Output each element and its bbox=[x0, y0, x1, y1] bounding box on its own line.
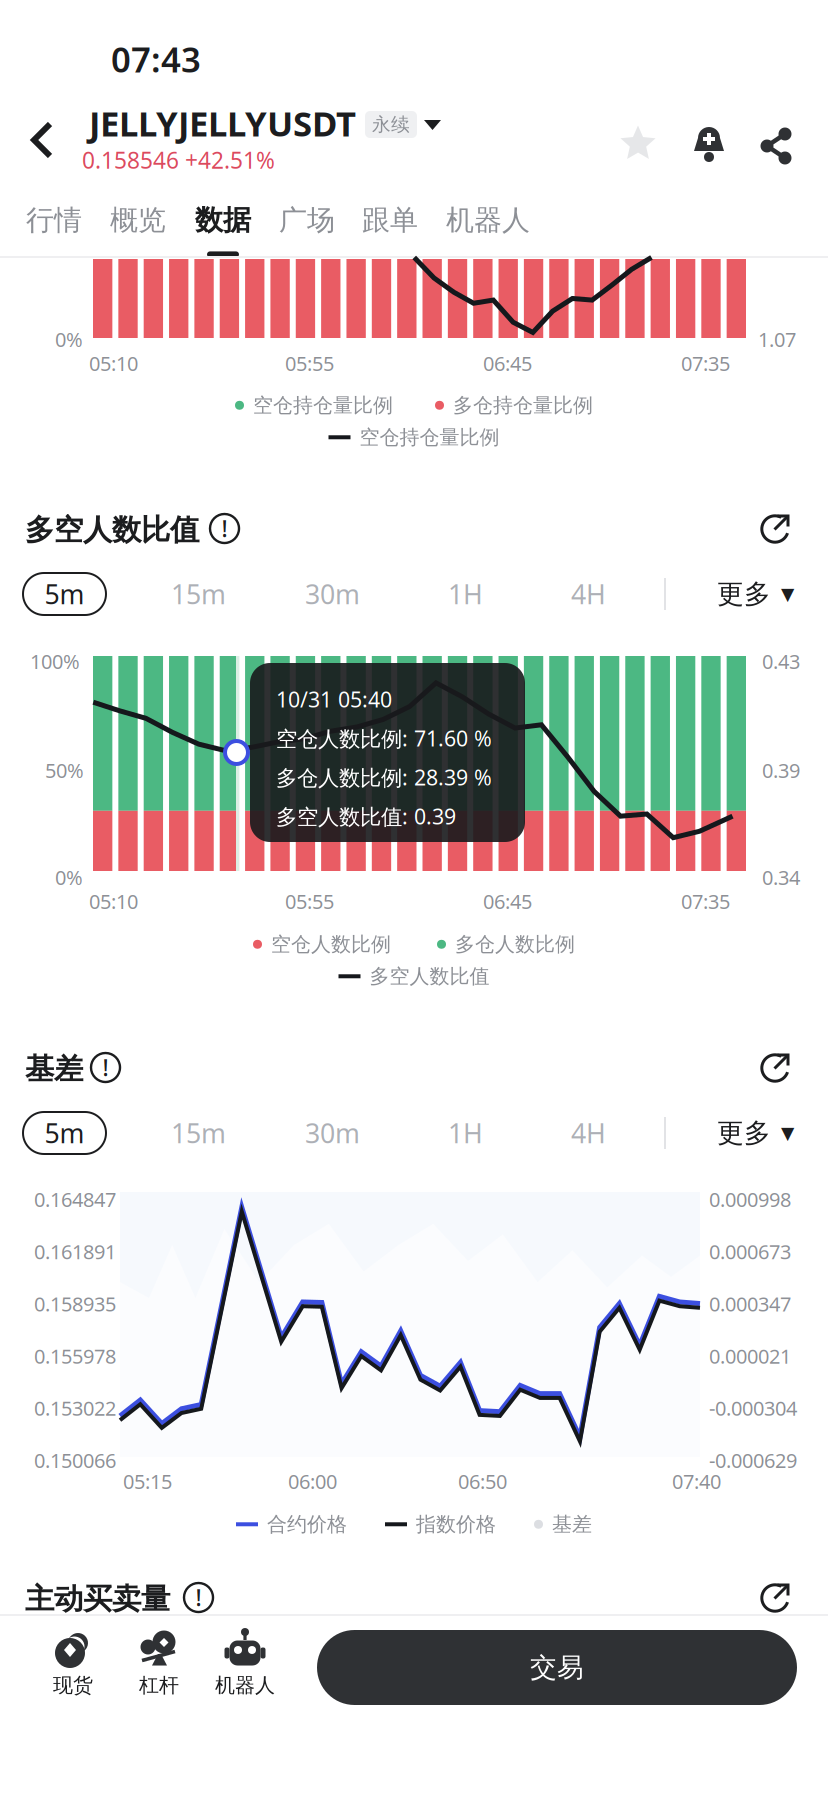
staticText: 05:10 bbox=[89, 888, 138, 915]
button[interactable]: Share bbox=[756, 126, 796, 166]
staticText: 06:00 bbox=[288, 1468, 337, 1495]
staticText: 0% bbox=[55, 326, 83, 353]
staticText: 概览 bbox=[110, 203, 166, 237]
button[interactable]: 跟单 bbox=[362, 203, 418, 257]
staticText: 空仓持仓量比例 bbox=[359, 425, 499, 450]
staticText: 0.000021 bbox=[709, 1343, 791, 1369]
staticText: 1.07 bbox=[758, 326, 796, 353]
staticText: 0.39 bbox=[762, 757, 800, 784]
staticText: 主动买卖量 bbox=[25, 1581, 170, 1617]
staticText: 0.161891 bbox=[34, 1238, 116, 1265]
staticText: 0% bbox=[55, 864, 83, 891]
button[interactable]: 15m bbox=[157, 1112, 240, 1154]
staticText: 多仓人数比例 bbox=[455, 932, 575, 957]
staticText: 跟单 bbox=[362, 203, 418, 237]
staticText: -0.000629 bbox=[709, 1447, 797, 1474]
button[interactable]: Favourite bbox=[619, 125, 657, 163]
staticText: 数据 bbox=[195, 203, 251, 237]
button[interactable]: Open 主动买卖量 chart bbox=[760, 1581, 792, 1613]
button[interactable]: 15m bbox=[157, 573, 240, 615]
staticText: 50% bbox=[45, 757, 84, 784]
staticText: 1H bbox=[448, 1115, 483, 1151]
button[interactable]: Back bbox=[6, 100, 78, 180]
button[interactable]: 数据 bbox=[195, 203, 251, 257]
staticText: 10/31 05:40 bbox=[276, 685, 392, 713]
button[interactable]: Open 基差 chart bbox=[760, 1051, 792, 1083]
staticText: 更多 bbox=[717, 1117, 771, 1149]
button[interactable]: 行情 bbox=[26, 203, 82, 257]
staticText: ▼ bbox=[781, 1123, 794, 1143]
staticText: 07:35 bbox=[681, 350, 730, 377]
staticText: 06:45 bbox=[483, 350, 532, 377]
button[interactable]: 1H bbox=[424, 573, 507, 615]
button[interactable]: 1H bbox=[424, 1112, 507, 1154]
button[interactable]: 5m bbox=[23, 573, 106, 615]
button[interactable]: 现货 bbox=[30, 1630, 116, 1698]
button[interactable]: Price alert bbox=[691, 121, 727, 163]
staticText: 更多 bbox=[717, 578, 771, 610]
staticText: 4H bbox=[571, 576, 606, 612]
staticText: 07:35 bbox=[681, 888, 730, 915]
staticText: 06:50 bbox=[458, 1468, 507, 1495]
staticText: 0.000673 bbox=[709, 1238, 791, 1265]
staticText: 05:55 bbox=[285, 350, 334, 377]
staticText: 05:10 bbox=[89, 350, 138, 377]
button[interactable]: 交易 bbox=[317, 1630, 797, 1705]
staticText: 现货 bbox=[53, 1673, 93, 1698]
button[interactable]: Open 多空人数比值 chart bbox=[760, 512, 792, 544]
staticText: 0.34 bbox=[762, 864, 800, 891]
staticText: ▼ bbox=[781, 584, 794, 604]
button[interactable]: 4H bbox=[547, 1112, 630, 1154]
button[interactable]: 广场 bbox=[279, 203, 335, 257]
staticText: 05:55 bbox=[285, 888, 334, 915]
button[interactable]: 5m bbox=[23, 1112, 106, 1154]
staticText: -0.000304 bbox=[709, 1395, 797, 1421]
staticText: 0.153022 bbox=[34, 1395, 116, 1421]
staticText: 07:40 bbox=[672, 1468, 721, 1495]
staticText: 5m bbox=[44, 1115, 84, 1151]
staticText: 0.150066 bbox=[34, 1447, 116, 1474]
staticText: 0.155978 bbox=[34, 1343, 116, 1369]
staticText: 30m bbox=[305, 1115, 360, 1151]
staticText: 15m bbox=[171, 576, 226, 612]
button[interactable]: 更多 bbox=[717, 1112, 794, 1154]
staticText: 0.43 bbox=[762, 648, 800, 675]
staticText: 15m bbox=[171, 1115, 226, 1151]
staticText: 机器人 bbox=[446, 203, 530, 237]
staticText: 多仓持仓量比例 bbox=[453, 393, 593, 418]
staticText: 基差 bbox=[25, 1051, 83, 1087]
staticText: 1H bbox=[448, 576, 483, 612]
button[interactable]: 杠杆 bbox=[116, 1630, 202, 1698]
staticText: ! bbox=[221, 513, 227, 543]
staticText: 100% bbox=[30, 648, 80, 675]
button[interactable]: 机器人 bbox=[202, 1630, 288, 1698]
staticText: 空仓人数比例 bbox=[271, 932, 391, 957]
button[interactable]: 30m bbox=[291, 1112, 374, 1154]
staticText: 05:15 bbox=[123, 1468, 172, 1495]
button[interactable]: 4H bbox=[547, 573, 630, 615]
staticText: 行情 bbox=[26, 203, 82, 237]
staticText: 合约价格 bbox=[267, 1512, 347, 1537]
staticText: 0.158935 bbox=[34, 1290, 116, 1317]
staticText: JELLYJELLYUSDT bbox=[89, 100, 356, 146]
button[interactable]: 概览 bbox=[110, 203, 166, 257]
staticText: 0.000998 bbox=[709, 1186, 791, 1213]
staticText: 杠杆 bbox=[139, 1673, 179, 1698]
staticText: 广场 bbox=[279, 203, 335, 237]
staticText: 多空人数比值 bbox=[369, 964, 489, 989]
staticText: 指数价格 bbox=[416, 1512, 496, 1537]
staticText: 多空人数比值: 0.39 bbox=[276, 802, 456, 830]
staticText: ! bbox=[195, 1582, 201, 1612]
staticText: 空仓持仓量比例 bbox=[253, 393, 393, 418]
staticText: 机器人 bbox=[215, 1673, 275, 1698]
button[interactable]: 更多 bbox=[717, 573, 794, 615]
staticText: 空仓人数比例: 71.60 % bbox=[276, 724, 492, 752]
staticText: 多仓人数比例: 28.39 % bbox=[276, 763, 492, 791]
button[interactable]: 30m bbox=[291, 573, 374, 615]
staticText: 30m bbox=[305, 576, 360, 612]
staticText: 4H bbox=[571, 1115, 606, 1151]
button[interactable]: 机器人 bbox=[446, 203, 530, 257]
staticText: 基差 bbox=[552, 1512, 592, 1537]
staticText: ! bbox=[102, 1052, 108, 1082]
staticText: 0.000347 bbox=[709, 1290, 791, 1317]
